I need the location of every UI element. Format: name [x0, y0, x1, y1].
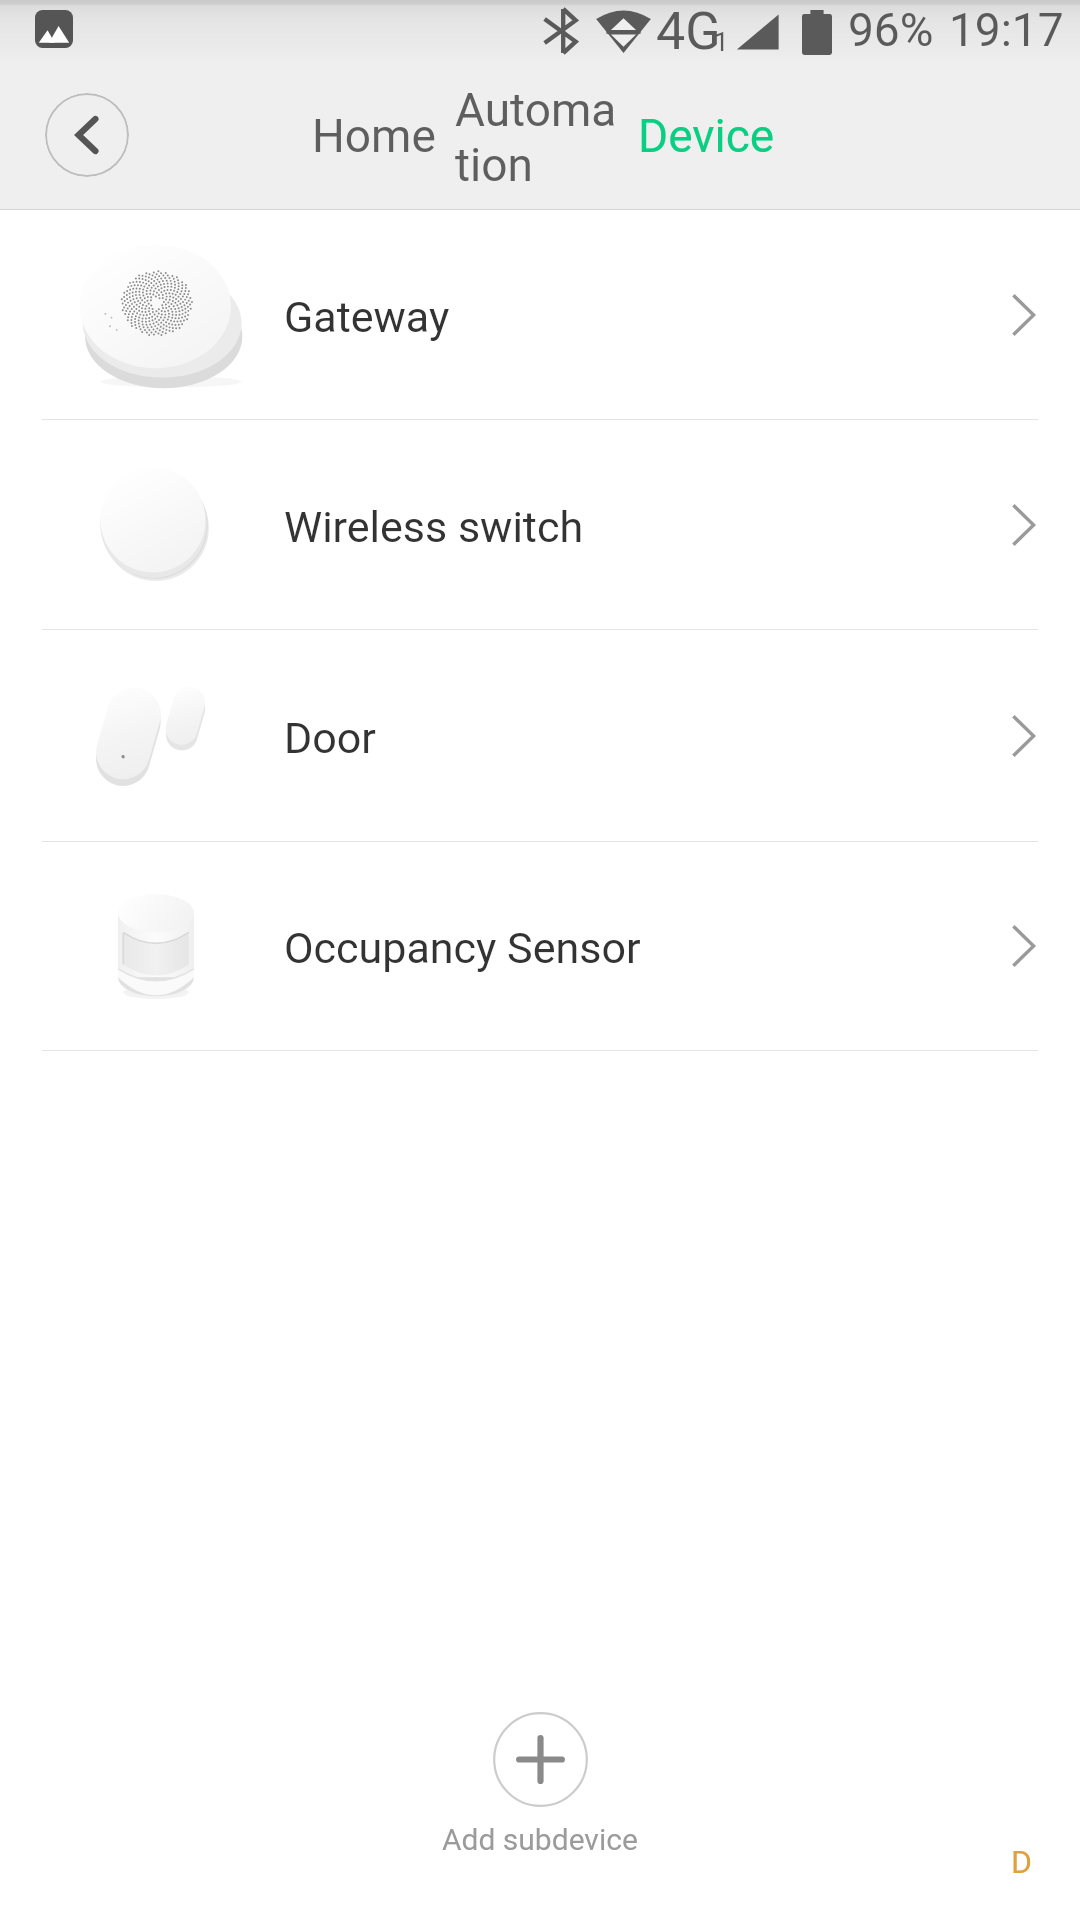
staticText: Door: [284, 713, 376, 763]
other: Bluetooth on: [544, 8, 576, 54]
other: Battery: [802, 10, 832, 55]
button[interactable]: Device: [638, 109, 775, 163]
staticText: Occupancy Sensor: [284, 923, 641, 973]
button[interactable]: Home: [312, 109, 436, 163]
button[interactable]: Wireless switch: [0, 420, 1080, 629]
staticText: 19:17: [949, 3, 1064, 57]
button[interactable]: Door: [0, 630, 1080, 841]
button[interactable]: Gateway: [0, 210, 1080, 419]
staticText: Add subdevice: [442, 1822, 638, 1857]
button[interactable]: Back: [45, 93, 129, 177]
staticText: Gateway: [284, 292, 450, 342]
button[interactable]: Automation: [455, 83, 620, 193]
button[interactable]: Occupancy Sensor: [0, 842, 1080, 1050]
button[interactable]: Add subdevice: [442, 1712, 638, 1857]
staticText: Device: [638, 109, 775, 163]
staticText: Automation: [455, 83, 620, 193]
staticText: 1: [714, 27, 729, 57]
staticText: 4G: [656, 1, 721, 61]
staticText: Home: [312, 109, 436, 163]
staticText: D: [1011, 1843, 1032, 1881]
staticText: Wireless switch: [284, 502, 584, 552]
other: Wi-Fi connected: [595, 9, 652, 53]
other: Screenshot captured: [35, 10, 73, 48]
other: Mobile signal: [733, 9, 781, 55]
staticText: 96%: [848, 3, 934, 57]
